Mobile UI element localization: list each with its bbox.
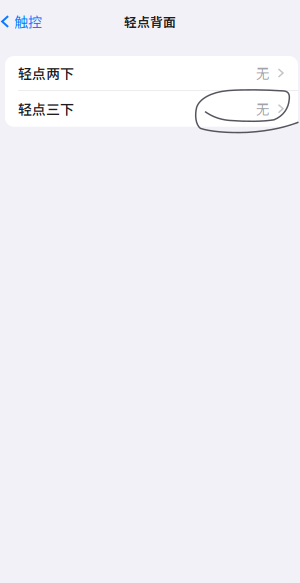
button[interactable]: 返回 触控 — [0, 7, 42, 36]
staticText: 轻点背面 — [124, 12, 176, 31]
staticText: 触控 — [14, 11, 42, 32]
staticText: 轻点三下 — [18, 99, 74, 119]
button[interactable]: 轻点两下 — [5, 56, 298, 90]
button[interactable]: 轻点三下 — [5, 91, 298, 127]
staticText: 无 — [256, 99, 269, 118]
staticText: 轻点两下 — [18, 63, 74, 83]
staticText: 无 — [256, 63, 269, 83]
